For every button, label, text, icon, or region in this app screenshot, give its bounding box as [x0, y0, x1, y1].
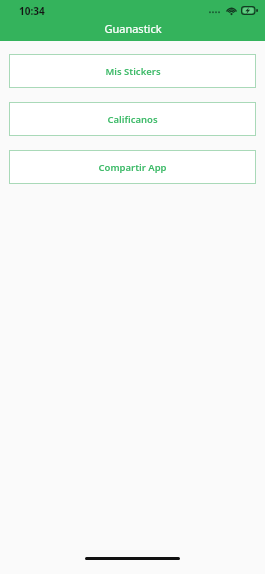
- staticText: Compartir App: [98, 161, 167, 174]
- other: Wi-Fi: [226, 6, 237, 15]
- button[interactable]: Calificanos: [9, 102, 256, 136]
- button[interactable]: Mis Stickers: [9, 54, 256, 88]
- staticText: Guanastick: [104, 21, 162, 36]
- staticText: Mis Stickers: [105, 65, 161, 78]
- other: Battery charging: [241, 6, 258, 15]
- staticText: Calificanos: [107, 113, 158, 126]
- other: Cellular signal: [209, 7, 222, 15]
- staticText: 10:34: [19, 4, 45, 18]
- button[interactable]: Compartir App: [9, 150, 256, 184]
